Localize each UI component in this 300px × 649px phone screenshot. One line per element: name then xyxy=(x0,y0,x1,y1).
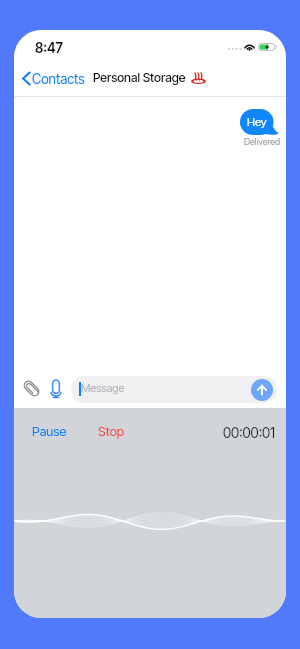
staticText: 8:47 xyxy=(35,40,63,56)
button[interactable]: Message xyxy=(71,376,277,403)
button[interactable]: Contacts xyxy=(22,68,85,89)
staticText: Message xyxy=(81,381,125,394)
staticText: Personal Storage xyxy=(93,70,186,85)
staticText: 00:00:01 xyxy=(223,424,276,441)
button[interactable]: Record voice message xyxy=(47,377,65,399)
button[interactable]: Attach file xyxy=(22,378,41,399)
button[interactable]: Pause xyxy=(28,419,71,443)
staticText: Pause xyxy=(32,423,67,439)
staticText: Contacts xyxy=(32,71,85,87)
staticText: Hey xyxy=(247,115,267,129)
button[interactable]: Send xyxy=(251,379,273,401)
staticText: Stop xyxy=(98,423,125,439)
button[interactable]: Hey xyxy=(240,109,279,135)
staticText: Delivered xyxy=(244,136,281,147)
button[interactable]: Stop xyxy=(94,419,129,443)
